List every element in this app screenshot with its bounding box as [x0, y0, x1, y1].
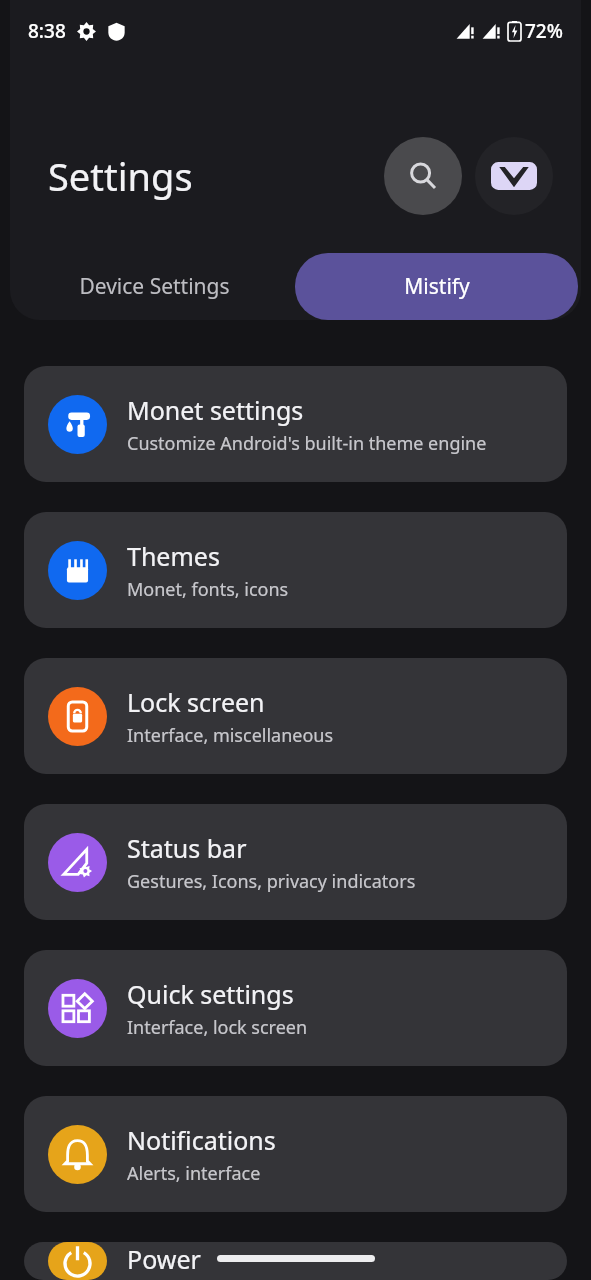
staticText: Settings [48, 150, 193, 202]
staticText: Monet, fonts, icons [127, 577, 289, 602]
button[interactable]: Lock screen [24, 658, 567, 774]
staticText: Customize Android's built-in theme engin… [127, 431, 487, 456]
staticText: Alerts, interface [127, 1161, 261, 1186]
staticText: Mistify [404, 272, 470, 301]
button[interactable]: Device Settings [13, 253, 295, 320]
button[interactable]: Search [384, 137, 462, 215]
staticText: Interface, lock screen [127, 1015, 308, 1040]
button[interactable]: Notifications [24, 1096, 567, 1212]
button[interactable]: Quick settings [24, 950, 567, 1066]
button[interactable]: Mistify app [475, 137, 553, 215]
staticText: Status bar [127, 831, 247, 865]
staticText: Device Settings [79, 272, 230, 301]
staticText: Themes [127, 539, 220, 573]
button[interactable]: Themes [24, 512, 567, 628]
staticText: Gestures, Icons, privacy indicators [127, 869, 416, 894]
staticText: Monet settings [127, 393, 304, 427]
button[interactable]: Status bar [24, 804, 567, 920]
button[interactable]: Monet settings [24, 366, 567, 482]
staticText: Power [127, 1242, 201, 1276]
staticText: Notifications [127, 1123, 276, 1157]
staticText: 8:38 [28, 18, 66, 44]
staticText: Quick settings [127, 977, 294, 1011]
button[interactable]: Power [24, 1242, 567, 1280]
button[interactable]: Mistify [295, 253, 578, 320]
staticText: Interface, miscellaneous [127, 723, 334, 748]
staticText: 72% [525, 18, 563, 44]
staticText: Lock screen [127, 685, 265, 719]
